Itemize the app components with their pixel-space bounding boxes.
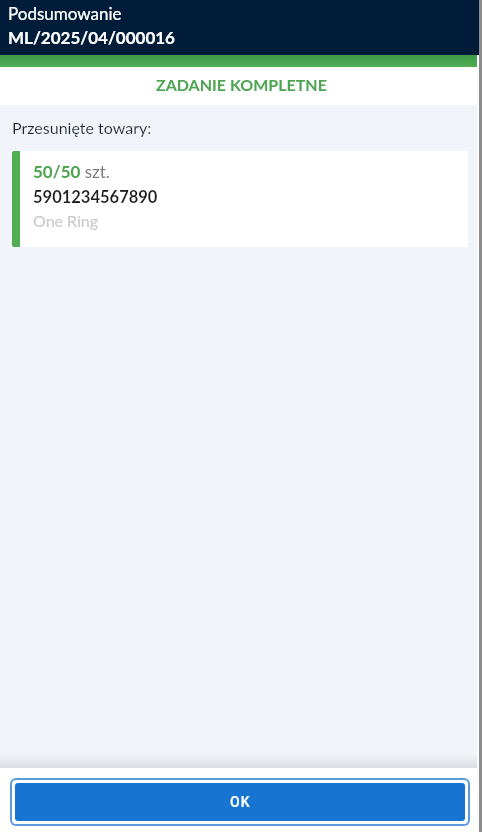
staticText: ML/2025/04/000016	[8, 27, 175, 47]
staticText: OK	[230, 794, 251, 810]
button[interactable]: OK	[15, 783, 465, 821]
staticText: ZADANIE KOMPLETNE	[156, 75, 327, 94]
staticText: 50/50 szt.	[33, 161, 110, 181]
button[interactable]: Podsumowanie ML/2025/04/000016	[0, 0, 482, 55]
other: Postęp zadania 100%	[0, 55, 482, 67]
button[interactable]: 50/50 szt.	[12, 151, 468, 247]
staticText: Przesunięte towary:	[12, 118, 152, 137]
staticText: 5901234567890	[33, 187, 158, 207]
staticText: One Ring	[33, 211, 99, 230]
staticText: Podsumowanie	[8, 3, 122, 23]
